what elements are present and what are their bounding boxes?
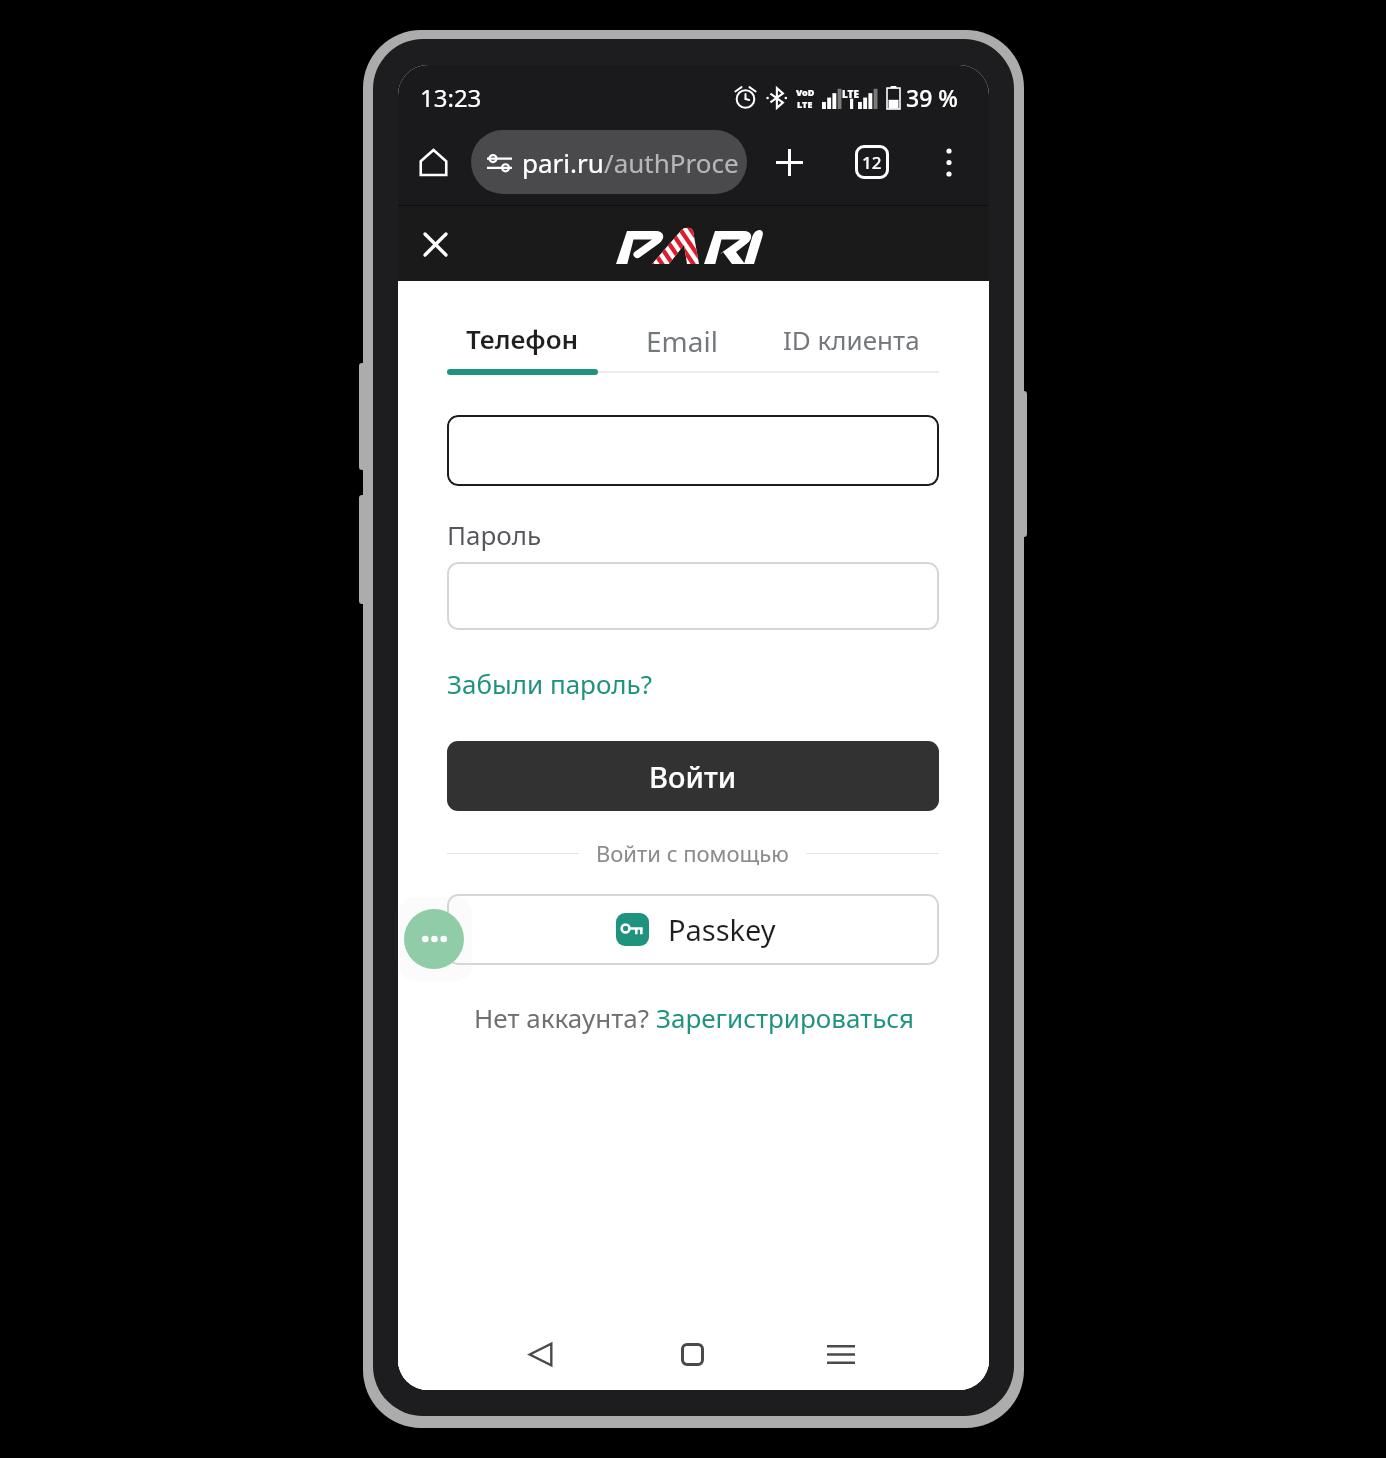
button[interactable]: Tabs [850,140,894,184]
staticText: Email [646,322,718,360]
staticText: ID клиента [783,322,920,357]
staticText: Пароль [447,517,542,552]
button[interactable]: Телефон [447,303,598,375]
button[interactable]: Зарегистрироваться [656,1000,914,1035]
staticText: Забыли пароль? [447,666,653,701]
button[interactable]: More options [927,140,971,184]
button[interactable]: Input field [447,562,939,630]
staticText: 39 % [906,82,958,113]
staticText: Войти с помощью [596,838,789,868]
button[interactable]: Email [598,303,761,375]
staticText: Зарегистрироваться [656,1000,914,1035]
button[interactable]: pari.ru [471,130,747,194]
button[interactable]: Back [517,1331,563,1377]
button[interactable]: Close [413,222,457,266]
staticText: Passkey [668,910,776,949]
button[interactable]: Recent apps [818,1331,864,1377]
staticText: VoD [796,86,815,98]
staticText: 12 [862,151,882,174]
button[interactable]: Input field [447,415,939,486]
button[interactable]: Home [411,140,455,184]
button[interactable]: Забыли пароль? [447,666,653,701]
button[interactable]: ID клиента [761,303,939,375]
button[interactable]: New tab [767,140,811,184]
staticText: Войти [649,757,737,796]
staticText: 13:23 [420,81,482,114]
staticText: Нет аккаунта? [474,1000,656,1035]
staticText: Телефон [466,321,579,356]
button[interactable]: Accessibility menu [404,909,464,969]
button[interactable]: Passkey [447,894,939,965]
staticText: LTE [842,87,860,101]
staticText: LTE [797,98,813,110]
button[interactable]: Войти [447,741,939,811]
staticText: pari.ru [522,145,604,180]
button[interactable]: Home [669,1331,715,1377]
staticText: /authProce [604,145,739,180]
